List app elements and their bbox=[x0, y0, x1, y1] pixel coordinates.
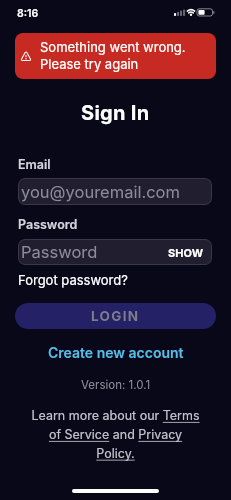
button[interactable]: Password bbox=[18, 239, 212, 265]
staticText: Password bbox=[21, 242, 98, 262]
button[interactable]: Learn more about our Terms of Service an… bbox=[31, 408, 200, 461]
button[interactable]: LOGIN bbox=[15, 303, 216, 329]
staticText: LOGIN bbox=[91, 308, 140, 324]
button[interactable]: SHOW bbox=[168, 246, 204, 259]
button[interactable]: Forgot password? bbox=[18, 272, 128, 288]
button[interactable]: you@youremail.com bbox=[18, 178, 212, 205]
button[interactable]: Something went wrong. Please try again bbox=[15, 33, 216, 79]
staticText: 8:16 bbox=[17, 7, 39, 20]
staticText: Version: 1.0.1 bbox=[81, 378, 151, 392]
staticText: Email bbox=[18, 157, 51, 172]
staticText: Something went wrong. Please try again bbox=[40, 39, 186, 72]
staticText: Sign In bbox=[81, 101, 150, 125]
staticText: Password bbox=[18, 217, 78, 232]
button[interactable]: Create new account bbox=[48, 344, 184, 361]
staticText: you@youremail.com bbox=[21, 182, 180, 202]
